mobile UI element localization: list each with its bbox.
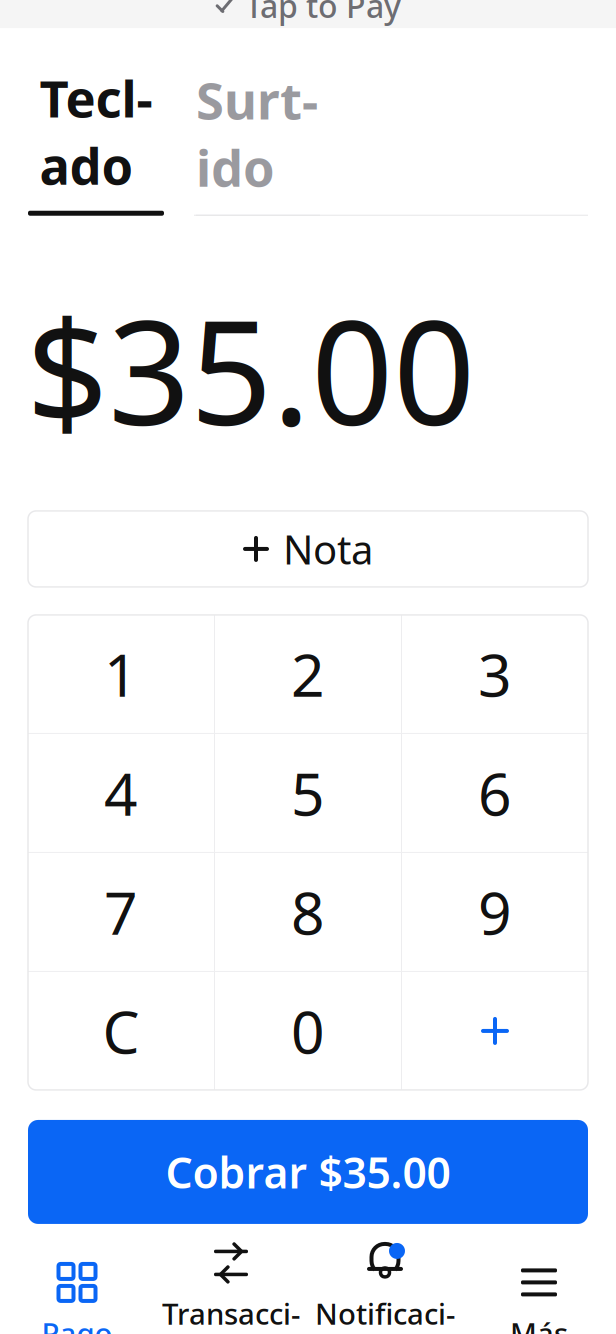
button[interactable]: 8 xyxy=(215,853,401,971)
button[interactable]: C xyxy=(28,972,214,1090)
button[interactable] xyxy=(402,972,588,1090)
staticText: $35.00 xyxy=(26,274,475,465)
staticText: 5 xyxy=(291,754,325,832)
button[interactable]: 4 xyxy=(28,734,214,852)
staticText: Tap to Pay xyxy=(245,0,401,27)
staticText: C xyxy=(102,992,139,1070)
button[interactable]: Transacciones xyxy=(154,1238,308,1334)
button[interactable]: 0 xyxy=(215,972,401,1090)
staticText: 8 xyxy=(291,873,325,951)
button[interactable]: Surtido xyxy=(194,66,320,216)
staticText: Cobrar $35.00 xyxy=(165,1144,450,1200)
button[interactable]: Cobrar $35.00 xyxy=(28,1120,588,1224)
button[interactable]: Pago xyxy=(0,1257,154,1334)
button[interactable]: 3 xyxy=(402,615,588,733)
staticText: 0 xyxy=(291,992,325,1070)
staticText: Surtido xyxy=(196,66,318,201)
button[interactable]: Notificaciones xyxy=(308,1238,462,1334)
staticText: Teclado xyxy=(39,64,152,199)
staticText: Más xyxy=(510,1313,568,1334)
button[interactable]: 1 xyxy=(28,615,214,733)
button[interactable]: Más xyxy=(462,1257,616,1334)
staticText: 7 xyxy=(104,873,138,951)
staticText: 4 xyxy=(104,754,138,832)
button[interactable]: 9 xyxy=(402,853,588,971)
staticText: 3 xyxy=(478,635,512,713)
button[interactable]: 2 xyxy=(215,615,401,733)
button[interactable]: Nota xyxy=(28,511,588,587)
staticText: Transacciones xyxy=(162,1294,300,1334)
button[interactable]: 6 xyxy=(402,734,588,852)
button[interactable]: Teclado xyxy=(28,64,164,216)
staticText: Notificaciones xyxy=(315,1294,455,1334)
staticText: Nota xyxy=(283,522,373,575)
staticText: 9 xyxy=(478,873,512,951)
staticText: 2 xyxy=(291,635,325,713)
button[interactable]: 5 xyxy=(215,734,401,852)
staticText: 1 xyxy=(104,635,138,713)
staticText: 6 xyxy=(478,754,512,832)
staticText: Pago xyxy=(41,1313,112,1334)
button[interactable]: 7 xyxy=(28,853,214,971)
